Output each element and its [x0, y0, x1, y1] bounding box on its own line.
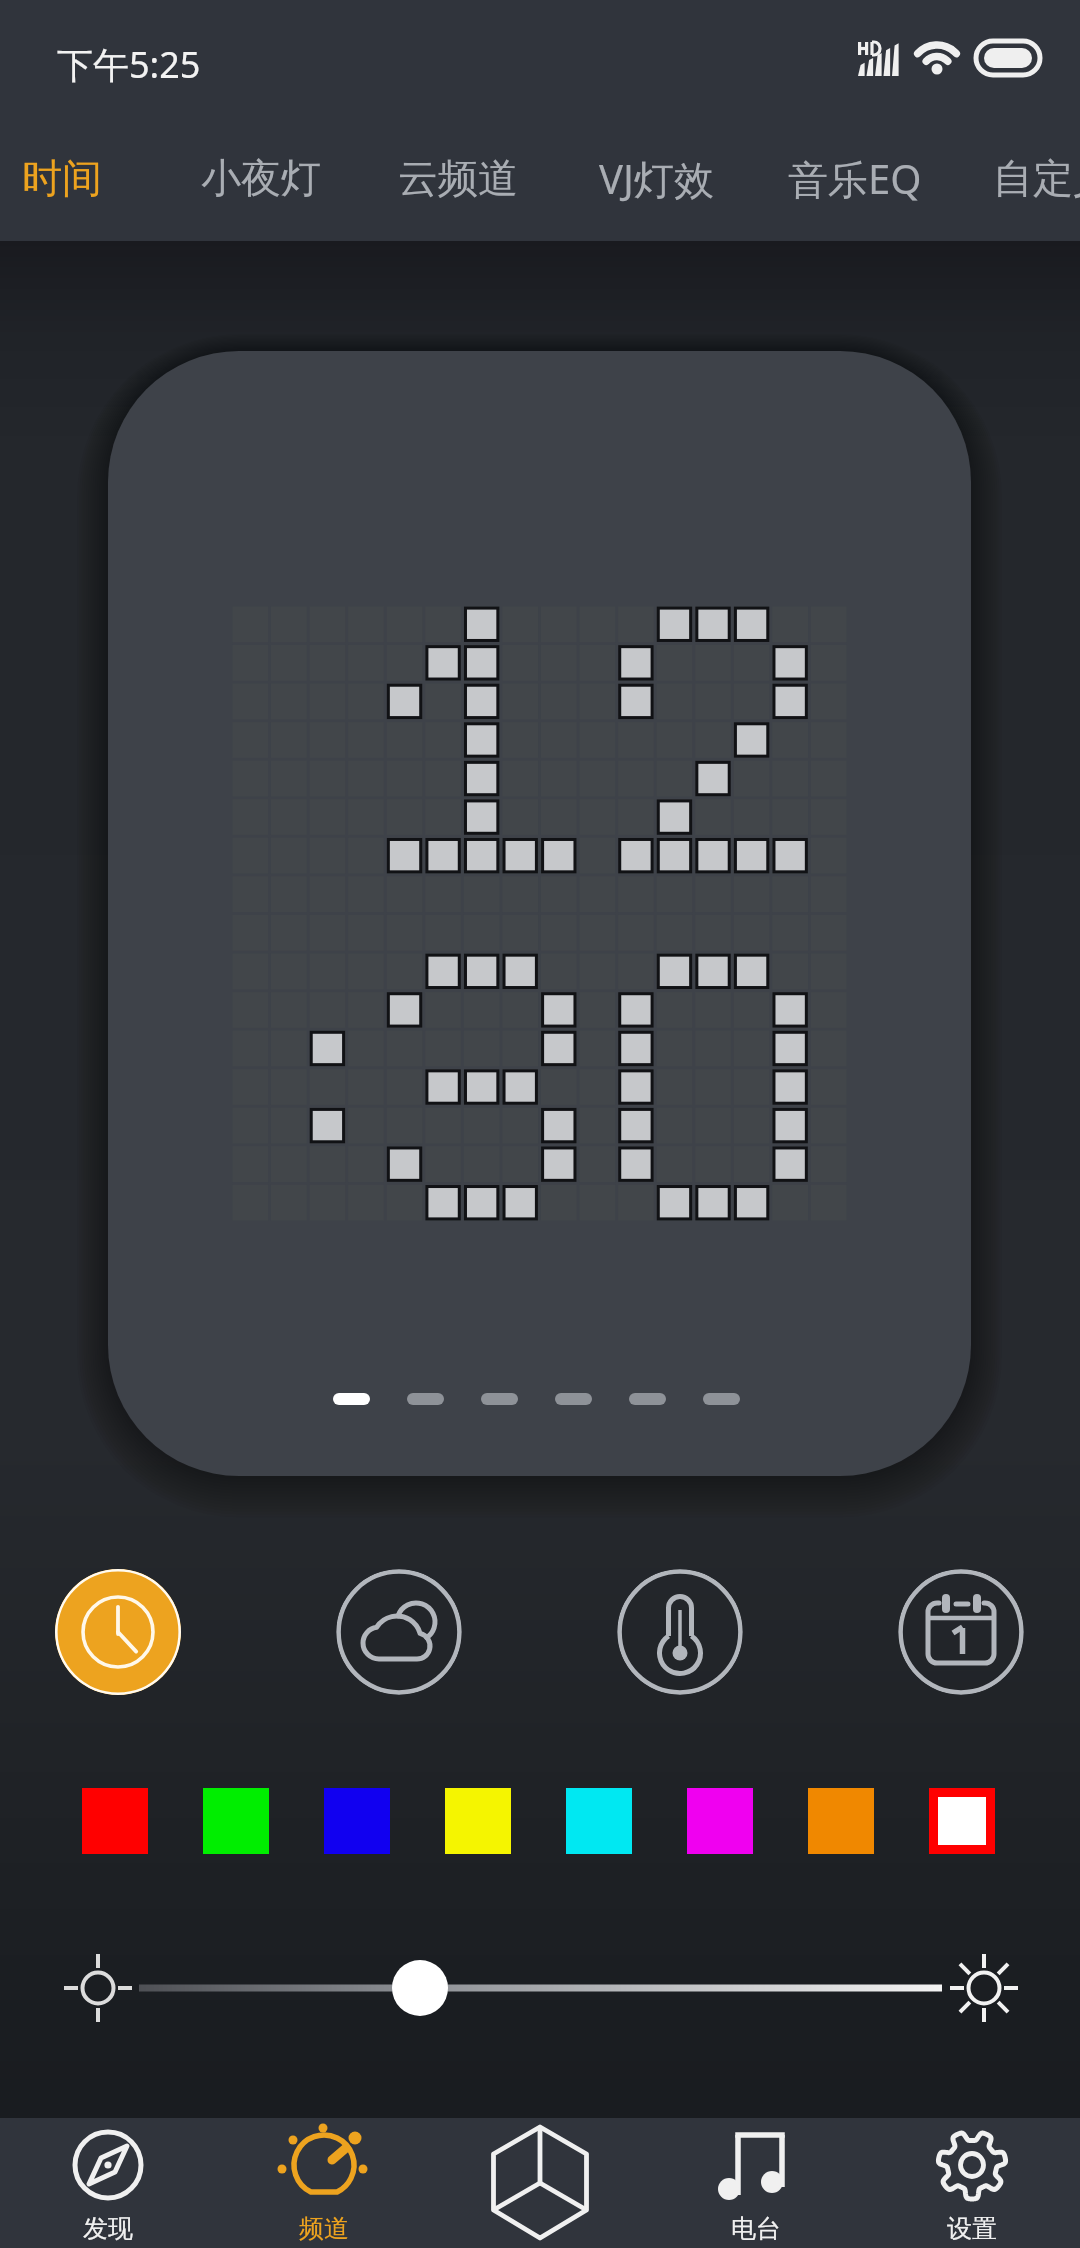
staticText: 电台 [731, 2213, 781, 2244]
staticText: VJ灯效 [599, 151, 714, 206]
button[interactable]: 音乐EQ [762, 123, 948, 233]
button[interactable]: 小夜灯 [175, 123, 347, 233]
button[interactable]: Radio [648, 2118, 864, 2248]
button[interactable]: 时间 [0, 123, 128, 233]
button[interactable]: Channel [216, 2118, 432, 2248]
staticText: 小夜灯 [201, 153, 321, 203]
button[interactable]: Page 2 [407, 1393, 444, 1405]
button[interactable]: Settings [864, 2118, 1080, 2248]
staticText: 发现 [83, 2213, 133, 2244]
staticText: 云频道 [398, 153, 518, 203]
button[interactable]: Scenes [432, 2118, 648, 2248]
button[interactable]: Discover [0, 2118, 216, 2248]
staticText: 音乐EQ [788, 151, 922, 206]
button[interactable]: Page 5 [629, 1393, 666, 1405]
staticText: 下午5:25 [57, 40, 201, 89]
button[interactable]: Page 6 [703, 1393, 740, 1405]
button[interactable]: Page 1 [333, 1393, 370, 1405]
staticText: 时间 [22, 153, 102, 203]
button[interactable]: VJ灯效 [573, 123, 740, 233]
staticText: 自定义 [993, 153, 1080, 203]
button[interactable]: Page 3 [481, 1393, 518, 1405]
staticText: 频道 [299, 2213, 349, 2244]
button[interactable]: 云频道 [372, 123, 544, 233]
button[interactable]: Page 4 [555, 1393, 592, 1405]
button[interactable]: Colour 8 [929, 1788, 995, 1854]
button[interactable]: Page 1 [108, 351, 971, 1476]
button[interactable]: Calendar [898, 1569, 1024, 1695]
staticText: 设置 [947, 2213, 997, 2244]
button[interactable]: 自定义 [967, 123, 1080, 233]
button[interactable]: Clock [55, 1569, 181, 1695]
button[interactable]: Brightness [392, 1960, 448, 2016]
button[interactable]: Weather [336, 1569, 462, 1695]
button[interactable]: Temperature [617, 1569, 743, 1695]
